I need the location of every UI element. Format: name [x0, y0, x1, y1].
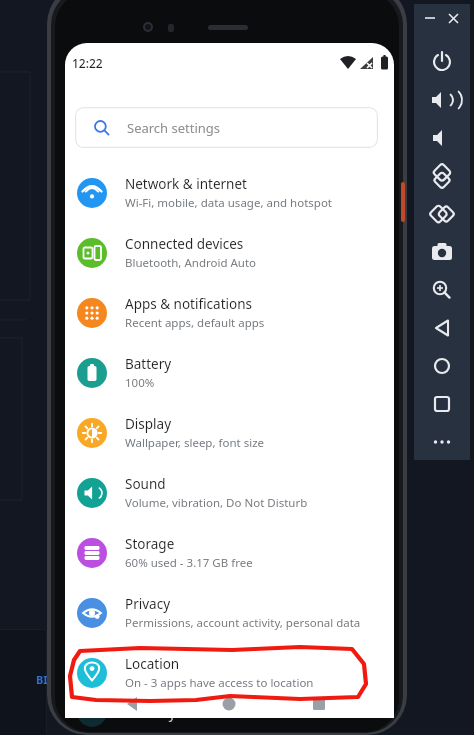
staticText: Bluetooth, Android Auto [125, 255, 257, 271]
button[interactable]: Display [65, 405, 394, 461]
button[interactable]: Search settings [75, 107, 378, 148]
staticText: Permissions, account activity, personal … [125, 615, 361, 631]
button[interactable]: Storage [65, 525, 394, 581]
button[interactable]: Back [422, 308, 462, 348]
staticText: Apps & notifications [125, 295, 252, 313]
staticText: Wi-Fi, mobile, data usage, and hotspot [125, 195, 332, 211]
staticText: Search settings [127, 119, 221, 137]
button[interactable]: Zoom [422, 270, 462, 310]
button[interactable]: Close [444, 8, 464, 28]
button[interactable]: Recent apps [301, 692, 337, 716]
staticText: Network & internet [125, 175, 247, 193]
button[interactable]: Apps & notifications [65, 285, 394, 341]
staticText: Recent apps, default apps [125, 315, 265, 331]
button[interactable]: Sound [65, 465, 394, 521]
button[interactable]: Rotate right [422, 194, 462, 234]
staticText: Privacy [125, 595, 171, 613]
staticText: Battery [125, 355, 172, 373]
button[interactable]: More [422, 422, 462, 462]
staticText: On - 3 apps have access to location [125, 675, 314, 691]
button[interactable]: Home [422, 346, 462, 386]
button[interactable]: Network & internet [65, 165, 394, 221]
staticText: 60% used - 3.17 GB free [125, 555, 253, 571]
button[interactable]: Connected devices [65, 225, 394, 281]
button[interactable]: Back [118, 692, 154, 716]
staticText: Volume, vibration, Do Not Disturb [125, 495, 308, 511]
staticText: Connected devices [125, 235, 244, 253]
staticText: Location [125, 655, 180, 673]
button[interactable]: Privacy [65, 585, 394, 641]
button[interactable]: Volume up [422, 80, 462, 120]
other: Back [125, 690, 454, 718]
button[interactable]: Rotate left [422, 156, 462, 196]
button[interactable]: Screenshot [422, 232, 462, 272]
staticText: Security [125, 704, 176, 722]
staticText: Display [125, 415, 172, 433]
staticText: BI [36, 672, 48, 687]
staticText: 100% [125, 375, 155, 391]
button[interactable]: Minimize [420, 8, 440, 28]
button[interactable]: Home [211, 692, 247, 716]
button[interactable]: Power [422, 42, 462, 82]
button[interactable]: Overview [422, 384, 462, 424]
staticText: Wallpaper, sleep, font size [125, 435, 265, 451]
button[interactable]: Volume down [422, 118, 462, 158]
staticText: Sound [125, 475, 166, 493]
button[interactable]: Location [65, 645, 394, 701]
staticText: Storage [125, 535, 175, 553]
staticText: 12:22 [72, 55, 103, 71]
button[interactable]: Battery [65, 345, 394, 401]
